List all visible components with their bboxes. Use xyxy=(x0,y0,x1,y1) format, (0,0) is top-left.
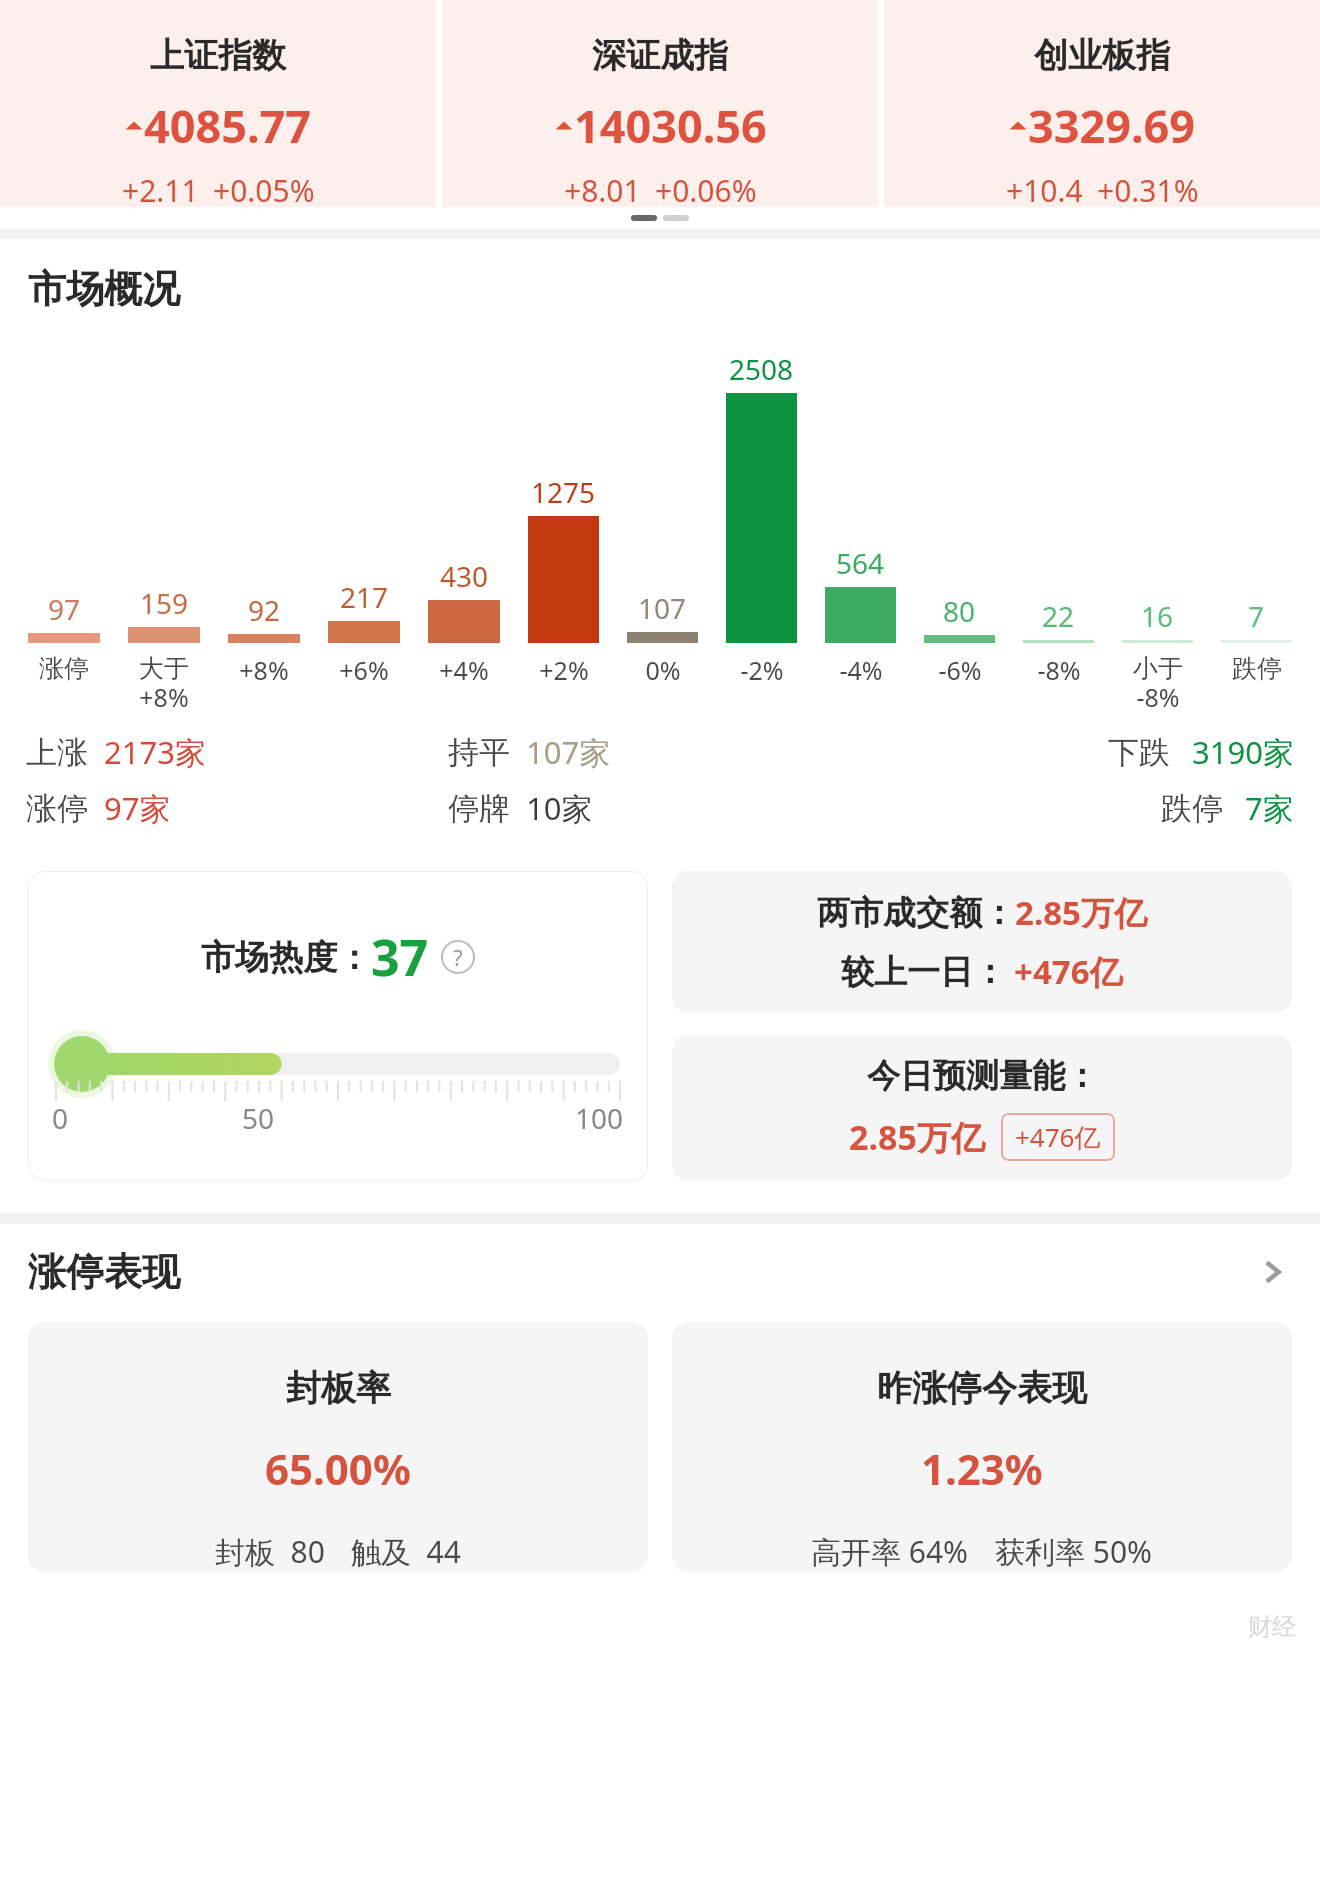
staticText: 65.00% xyxy=(265,1440,411,1497)
staticText: 深证成指 xyxy=(592,34,728,77)
staticText: 跌停 xyxy=(1161,789,1223,828)
staticText: 107 xyxy=(638,589,687,627)
staticText: 22 xyxy=(1042,597,1075,635)
staticText: 16 xyxy=(1141,597,1174,635)
staticText: 创业板指 xyxy=(1034,34,1170,77)
staticText: 涨停 xyxy=(26,789,88,828)
staticText: 2.85万亿 xyxy=(849,1114,985,1160)
staticText: 80 xyxy=(943,592,976,630)
staticText: 92 xyxy=(248,591,281,629)
staticText: 两市成交额： xyxy=(817,892,1015,934)
button[interactable]: 深证成指 xyxy=(442,0,878,207)
staticText: 7 xyxy=(1248,597,1265,635)
staticText: +4% xyxy=(439,653,489,687)
staticText: 564 xyxy=(836,544,885,582)
button[interactable]: 今日预测量能： xyxy=(672,1035,1292,1181)
staticText: 7家 xyxy=(1245,787,1294,829)
staticText: 高开率 64% xyxy=(811,1531,969,1572)
staticText: 涨停 xyxy=(39,653,89,684)
staticText: 较上一日： xyxy=(841,951,1006,993)
staticText: 下跌 xyxy=(1108,733,1170,772)
staticText: +0.05% xyxy=(213,170,315,207)
staticText: 97 xyxy=(48,590,81,628)
staticText: 触及 44 xyxy=(351,1531,461,1572)
staticText: 0% xyxy=(645,653,681,687)
staticText: +2% xyxy=(539,653,589,687)
staticText: 3190家 xyxy=(1192,731,1294,773)
staticText: 跌停 xyxy=(1232,653,1282,684)
staticText: 1275 xyxy=(531,473,596,511)
staticText: 37 xyxy=(371,923,429,991)
staticText: -4% xyxy=(839,653,883,687)
staticText: 今日预测量能： xyxy=(867,1055,1098,1097)
staticText: +0.06% xyxy=(655,170,757,207)
staticText: 2.85万亿 xyxy=(1015,890,1147,935)
staticText: 14030.56 xyxy=(574,95,767,156)
staticText: 封板率 xyxy=(286,1366,391,1410)
staticText: 1.23% xyxy=(921,1440,1043,1497)
staticText: -6% xyxy=(938,653,982,687)
staticText: 2508 xyxy=(729,350,794,388)
button[interactable]: 说明 xyxy=(441,940,475,974)
staticText: 107家 xyxy=(526,731,611,773)
staticText: 4085.77 xyxy=(144,95,312,156)
staticText: 市场热度： xyxy=(201,936,371,979)
staticText: +10.4 xyxy=(1006,170,1083,207)
staticText: 100 xyxy=(575,1099,624,1137)
staticText: 上证指数 xyxy=(150,34,286,77)
staticText: 50 xyxy=(242,1099,433,1137)
staticText: +476亿 xyxy=(1014,949,1123,994)
button[interactable]: 封板率 xyxy=(28,1322,648,1572)
button[interactable]: 两市成交额： xyxy=(672,871,1292,1013)
staticText: +476亿 xyxy=(1015,1119,1101,1155)
staticText: ? xyxy=(453,942,463,972)
staticText: 159 xyxy=(140,584,189,622)
staticText: 涨停表现 xyxy=(28,1248,180,1296)
staticText: 0 xyxy=(52,1099,242,1137)
staticText: 小于 -8% xyxy=(1133,653,1183,714)
staticText: 97家 xyxy=(104,787,171,829)
button[interactable]: 昨涨停今表现 xyxy=(672,1322,1292,1572)
staticText: +0.31% xyxy=(1097,170,1199,207)
staticText: -8% xyxy=(1037,653,1081,687)
staticText: 获利率 50% xyxy=(995,1531,1153,1572)
other: 更多 xyxy=(1252,1252,1292,1292)
staticText: 上涨 xyxy=(26,733,88,772)
staticText: 3329.69 xyxy=(1028,95,1196,156)
staticText: 2173家 xyxy=(104,731,206,773)
button[interactable]: 创业板指 xyxy=(884,0,1320,207)
staticText: +6% xyxy=(339,653,389,687)
staticText: 财经 xyxy=(1248,1612,1296,1642)
staticText: 市场概况 xyxy=(28,265,180,313)
staticText: 217 xyxy=(340,578,389,616)
staticText: 大于 +8% xyxy=(139,653,189,714)
button[interactable]: 市场热度： xyxy=(28,871,648,1181)
staticText: 持平 xyxy=(448,733,510,772)
staticText: 停牌 xyxy=(448,789,510,828)
staticText: -2% xyxy=(740,653,784,687)
staticText: 430 xyxy=(440,557,489,595)
button[interactable]: 涨停表现 xyxy=(28,1248,1292,1296)
staticText: +8.01 xyxy=(564,170,641,207)
staticText: 10家 xyxy=(526,787,593,829)
button[interactable]: 上证指数 xyxy=(0,0,436,207)
staticText: +8% xyxy=(239,653,289,687)
staticText: 昨涨停今表现 xyxy=(877,1366,1087,1410)
staticText: 封板 80 xyxy=(215,1531,325,1572)
staticText: +2.11 xyxy=(122,170,199,207)
